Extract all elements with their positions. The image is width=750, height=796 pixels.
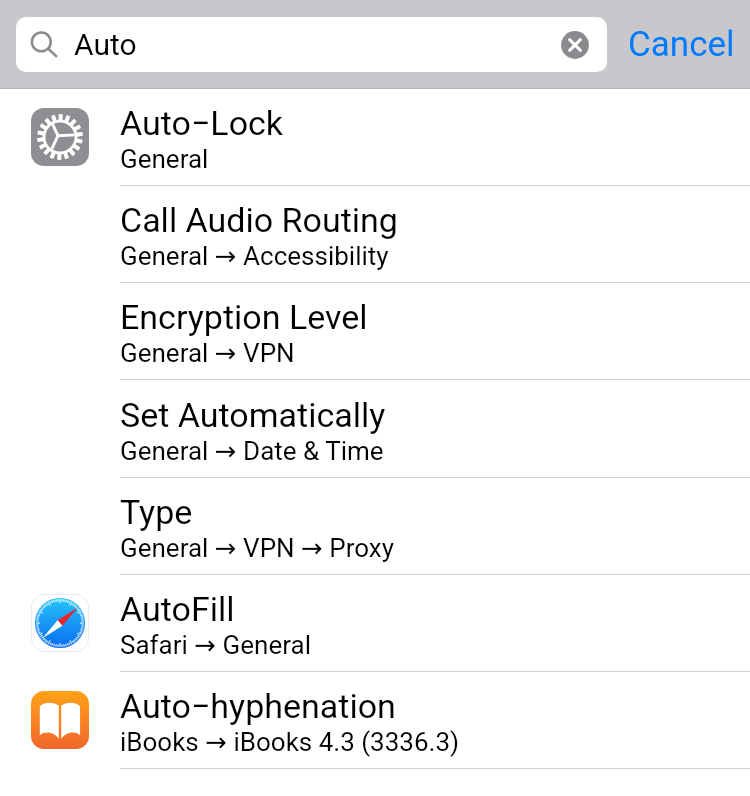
button[interactable]: Set Automatically bbox=[0, 381, 750, 478]
button[interactable]: Type bbox=[0, 478, 750, 575]
button[interactable]: AutoFill bbox=[0, 575, 750, 672]
staticText: Cancel bbox=[628, 24, 735, 65]
staticText: Set Automatically bbox=[120, 395, 386, 435]
staticText: Call Audio Routing bbox=[120, 200, 398, 240]
staticText: Auto bbox=[74, 27, 137, 62]
staticText: iBooks → iBooks 4.3 (3336.3) bbox=[120, 727, 460, 757]
button[interactable]: Encryption Level bbox=[0, 283, 750, 380]
staticText: General → VPN bbox=[120, 338, 295, 368]
button[interactable]: Search field bbox=[16, 17, 607, 72]
staticText: AutoFill bbox=[120, 589, 235, 629]
staticText: General → VPN → Proxy bbox=[120, 533, 395, 563]
staticText: Safari → General bbox=[120, 630, 311, 660]
button[interactable]: Auto−hyphenation bbox=[0, 672, 750, 769]
staticText: Encryption Level bbox=[120, 297, 368, 337]
button[interactable]: Clear search text bbox=[560, 30, 590, 60]
button[interactable]: Call Audio Routing bbox=[0, 186, 750, 283]
staticText: Type bbox=[120, 492, 193, 532]
button[interactable]: Cancel bbox=[612, 6, 750, 83]
staticText: General → Accessibility bbox=[120, 241, 389, 271]
button[interactable]: Auto−Lock bbox=[0, 89, 750, 186]
staticText: Auto−Lock bbox=[120, 103, 284, 143]
staticText: General bbox=[120, 144, 209, 174]
staticText: Auto−hyphenation bbox=[120, 686, 396, 726]
staticText: General → Date & Time bbox=[120, 436, 384, 466]
